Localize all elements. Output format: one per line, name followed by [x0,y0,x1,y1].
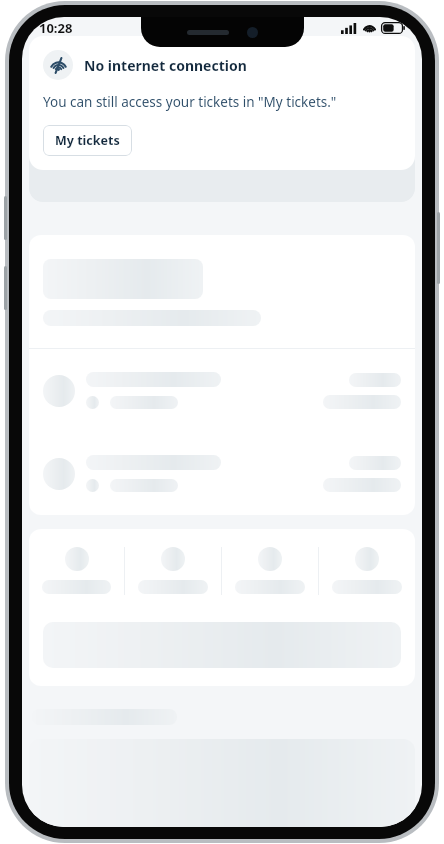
button[interactable] [29,235,415,515]
other: No internet [43,50,73,80]
staticText: My tickets [55,132,120,149]
button[interactable]: My tickets [43,125,132,156]
staticText: You can still access your tickets in "My… [43,93,337,111]
staticText: 10:28 [39,19,73,37]
staticText: No internet connection [84,56,247,75]
button[interactable] [29,529,415,686]
